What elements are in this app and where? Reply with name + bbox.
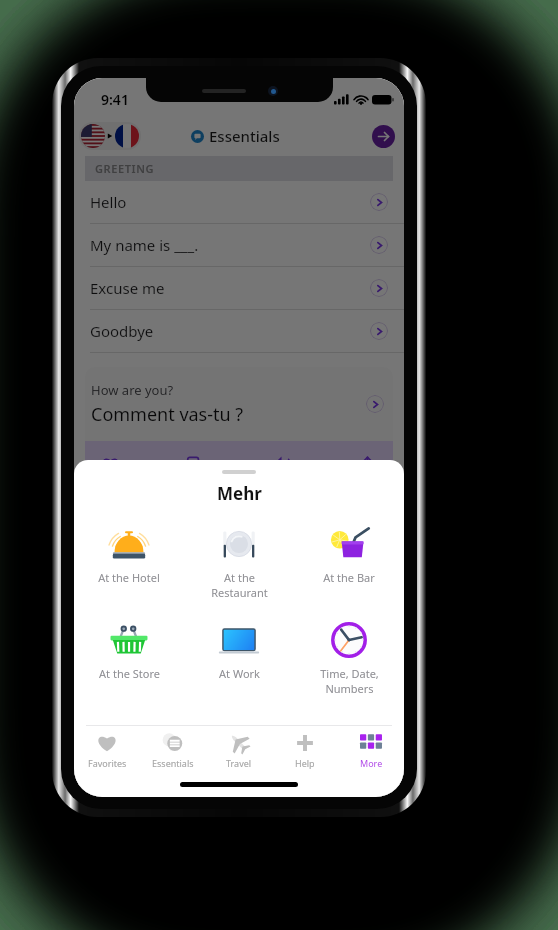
button[interactable]: At the Hotel [74, 519, 184, 589]
staticText: 9:41 [101, 90, 129, 109]
button[interactable]: At the Restaurant [184, 519, 294, 604]
button[interactable]: Travel [206, 726, 272, 774]
staticText: At Work [219, 666, 260, 681]
staticText: Help [295, 757, 315, 769]
button[interactable]: At the Store [74, 615, 184, 685]
staticText: Hello [90, 192, 127, 212]
button[interactable]: Essentials [140, 726, 206, 774]
button[interactable]: At Work [184, 615, 294, 685]
staticText: How are you? [91, 381, 174, 399]
button[interactable]: My name is ___. [74, 224, 404, 266]
button[interactable]: At the Bar [294, 519, 404, 589]
button[interactable]: Help [272, 726, 338, 774]
button[interactable]: Hello [74, 181, 404, 223]
staticText: At the Hotel [98, 570, 160, 585]
staticText: At the Restaurant [211, 570, 268, 600]
staticText: Essentials [152, 757, 194, 769]
staticText: At the Store [99, 666, 160, 681]
staticText: Mehr [217, 482, 262, 505]
staticText: Goodbye [90, 321, 154, 341]
staticText: Excuse me [90, 278, 165, 298]
staticText: Essentials [209, 126, 280, 146]
button[interactable]: Switch languages [79, 122, 141, 150]
staticText: At the Bar [323, 570, 375, 585]
staticText: Favorites [88, 757, 127, 769]
button[interactable]: Next [372, 125, 395, 148]
staticText: Time, Date, Numbers [320, 666, 379, 696]
staticText: GREETING [95, 161, 155, 176]
button[interactable]: Time, Date, Numbers [294, 615, 404, 700]
button[interactable]: Favorites [74, 726, 140, 774]
staticText: Comment vas-tu ? [91, 402, 244, 427]
staticText: Travel [226, 757, 252, 769]
button[interactable]: How are you? [85, 367, 393, 441]
button[interactable]: More [338, 726, 404, 774]
staticText: More [360, 757, 383, 769]
button[interactable]: Goodbye [74, 310, 404, 352]
button[interactable]: Excuse me [74, 267, 404, 309]
staticText: My name is ___. [90, 235, 199, 255]
